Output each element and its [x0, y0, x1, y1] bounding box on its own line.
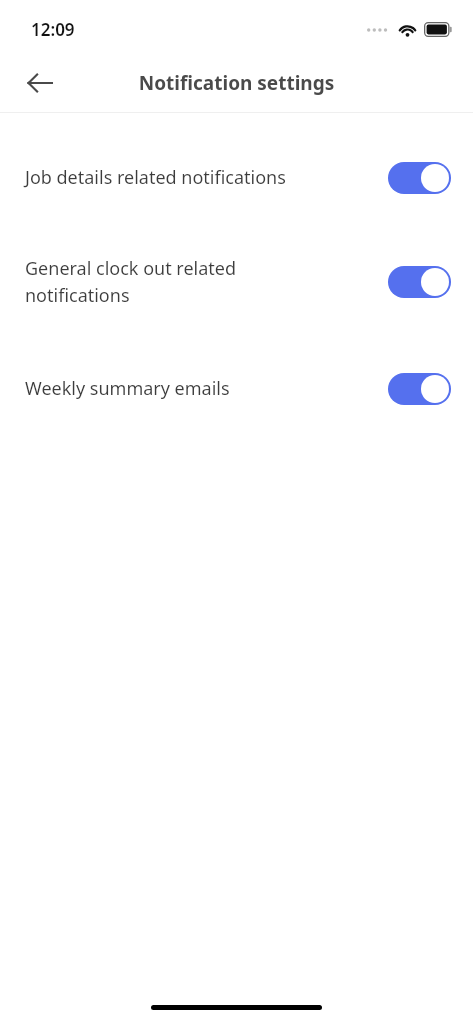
staticText: Notification settings — [0, 70, 473, 96]
button[interactable]: Toggle on — [388, 162, 451, 194]
staticText: 12:09 — [31, 18, 75, 41]
button[interactable]: Toggle on — [388, 373, 451, 405]
staticText: General clock out related notifications — [25, 256, 325, 307]
staticText: Job details related notifications — [25, 165, 325, 190]
button[interactable]: Toggle on — [388, 266, 451, 298]
button[interactable]: Back — [16, 59, 64, 107]
staticText: Weekly summary emails — [25, 376, 325, 401]
button[interactable]: Job details related notifications — [0, 149, 473, 206]
button[interactable]: Weekly summary emails — [0, 360, 473, 417]
button[interactable]: General clock out related notifications — [0, 253, 473, 310]
